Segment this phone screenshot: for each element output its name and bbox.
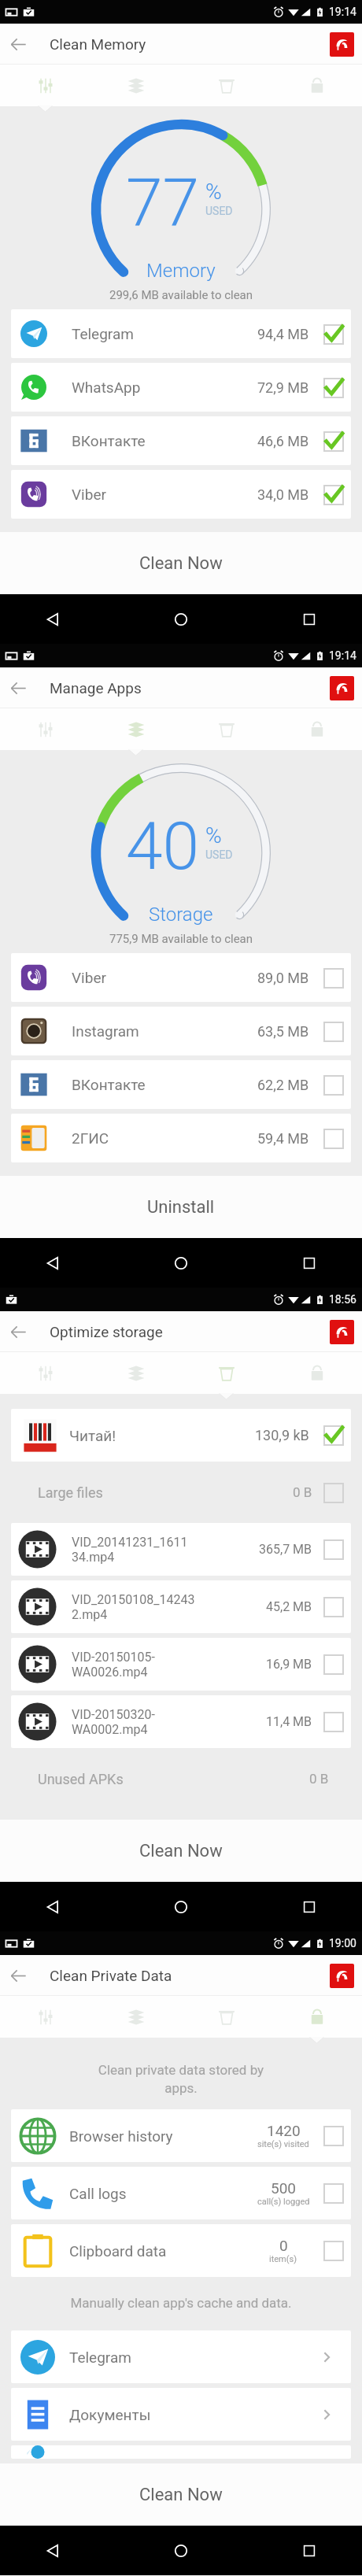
- staticText: call(s) logged: [257, 2197, 310, 2207]
- button[interactable]: VID_20141231_1611 34.mp4: [11, 1523, 351, 1576]
- staticText: ВКонтакте: [72, 432, 257, 449]
- button[interactable]: Home: [163, 1889, 199, 1925]
- button[interactable]: Back: [0, 1311, 36, 1352]
- staticText: 1420: [267, 2122, 301, 2139]
- button[interactable]: ВКонтакте: [11, 416, 351, 465]
- button[interactable]: Call logs: [11, 2167, 351, 2219]
- button[interactable]: Large files: [38, 1464, 346, 1521]
- button[interactable]: Clean memory: [0, 65, 90, 106]
- staticText: Uninstall: [147, 1197, 215, 1218]
- staticText: Clean Memory: [50, 35, 146, 53]
- button[interactable]: Instagram: [11, 1007, 351, 1055]
- staticText: WhatsApp: [72, 379, 257, 396]
- staticText: 0 B: [293, 1484, 312, 1500]
- button[interactable]: Home: [163, 1245, 199, 1281]
- staticText: Browser history: [69, 2127, 249, 2145]
- button[interactable]: Telegram: [11, 2330, 351, 2383]
- staticText: Читай!: [69, 1427, 255, 1444]
- staticText: Storage: [149, 904, 213, 926]
- staticText: 62,2 MB: [257, 1077, 309, 1093]
- button[interactable]: Clipboard data: [11, 2224, 351, 2277]
- button[interactable]: Back: [35, 2533, 71, 2569]
- button[interactable]: Clean memory: [0, 1352, 90, 1394]
- staticText: 94,4 MB: [257, 326, 309, 342]
- staticText: Документы: [69, 2406, 318, 2423]
- button[interactable]: Back: [0, 24, 36, 65]
- button[interactable]: Back: [35, 601, 71, 638]
- button[interactable]: Avira: [330, 32, 354, 57]
- button[interactable]: Clean Now: [0, 2463, 362, 2526]
- staticText: 34,0 MB: [257, 486, 309, 503]
- button[interactable]: Clean private data: [271, 1996, 362, 2038]
- button[interactable]: Optimize storage: [181, 65, 271, 106]
- staticText: site(s) visited: [257, 2139, 309, 2149]
- staticText: item(s): [269, 2254, 297, 2264]
- button[interactable]: Home: [163, 601, 199, 638]
- staticText: 16,9 MB: [266, 1657, 312, 1672]
- button[interactable]: Optimize storage: [181, 708, 271, 750]
- button[interactable]: VID-20150105- WA0026.mp4: [11, 1638, 351, 1691]
- staticText: %: [205, 179, 222, 205]
- staticText: Unused APKs: [38, 1771, 309, 1787]
- staticText: Clean Now: [139, 1841, 223, 1861]
- button[interactable]: Clean private data: [271, 1352, 362, 1394]
- button[interactable]: Recents: [291, 1889, 327, 1925]
- button[interactable]: 2ГИС: [11, 1114, 351, 1162]
- staticText: Manage Apps: [50, 679, 142, 697]
- button[interactable]: Viber: [11, 953, 351, 1002]
- staticText: ВКонтакте: [72, 1076, 257, 1093]
- staticText: Large files: [38, 1484, 293, 1501]
- button[interactable]: Читай!: [11, 1409, 351, 1462]
- staticText: VID_20150108_14243 2.mp4: [72, 1592, 263, 1622]
- button[interactable]: Manage apps: [90, 708, 181, 750]
- button[interactable]: Recents: [291, 1245, 327, 1281]
- button[interactable]: Back: [35, 1889, 71, 1925]
- button[interactable]: Telegram: [11, 309, 351, 358]
- button[interactable]: Clean Now: [0, 532, 362, 594]
- staticText: USED: [205, 205, 233, 217]
- button[interactable]: Home: [163, 2533, 199, 2569]
- staticText: 19:00: [329, 1937, 356, 1950]
- button[interactable]: Browser history: [11, 2109, 351, 2162]
- button[interactable]: Clean memory: [0, 708, 90, 750]
- staticText: VID-20150105- WA0026.mp4: [72, 1650, 263, 1680]
- button[interactable]: Unused APKs: [38, 1750, 346, 1807]
- staticText: Memory: [146, 260, 216, 282]
- button[interactable]: Clean Now: [0, 1820, 362, 1882]
- staticText: 130,9 kB: [255, 1427, 309, 1443]
- staticText: Instagram: [72, 1022, 257, 1040]
- staticText: 365,7 MB: [259, 1542, 312, 1557]
- button[interactable]: Manage apps: [90, 1996, 181, 2038]
- button[interactable]: Back: [0, 667, 36, 708]
- button[interactable]: Manage apps: [90, 1352, 181, 1394]
- button[interactable]: VID_20150108_14243 2.mp4: [11, 1580, 351, 1633]
- staticText: VID_20141231_1611 34.mp4: [72, 1535, 256, 1565]
- staticText: 18:56: [329, 1293, 356, 1306]
- button[interactable]: Avira: [330, 1964, 354, 1988]
- button[interactable]: Clean private data: [271, 708, 362, 750]
- button[interactable]: WhatsApp: [11, 363, 351, 412]
- button[interactable]: Uninstall: [0, 1176, 362, 1238]
- button[interactable]: Документы: [11, 2388, 351, 2441]
- staticText: Clean private data stored by apps.: [0, 2062, 362, 2096]
- button[interactable]: ВКонтакте: [11, 1060, 351, 1109]
- button[interactable]: Optimize storage: [181, 1352, 271, 1394]
- button[interactable]: VID-20150320- WA0002.mp4: [11, 1695, 351, 1748]
- staticText: Telegram: [69, 2349, 318, 2366]
- button[interactable]: Avira: [330, 676, 354, 700]
- button[interactable]: Back: [35, 1245, 71, 1281]
- staticText: 89,0 MB: [257, 970, 309, 986]
- button[interactable]: Back: [0, 1955, 36, 1996]
- button[interactable]: Avira: [330, 1320, 354, 1344]
- button[interactable]: Recents: [291, 2533, 327, 2569]
- staticText: %: [205, 822, 222, 848]
- button[interactable]: Viber: [11, 470, 351, 519]
- staticText: Viber: [72, 486, 257, 503]
- button[interactable]: Recents: [291, 601, 327, 638]
- staticText: 19:14: [329, 649, 356, 662]
- button[interactable]: Optimize storage: [181, 1996, 271, 2038]
- staticText: 11,4 MB: [266, 1714, 312, 1729]
- button[interactable]: Manage apps: [90, 65, 181, 106]
- button[interactable]: Clean private data: [271, 65, 362, 106]
